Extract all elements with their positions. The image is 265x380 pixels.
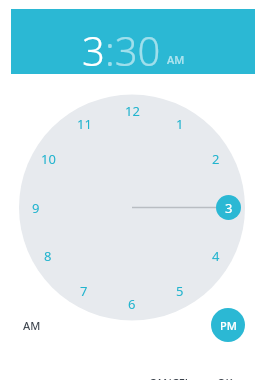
staticText: 1 bbox=[176, 115, 184, 133]
staticText: 7 bbox=[80, 282, 88, 300]
staticText: 3 bbox=[225, 199, 233, 217]
button[interactable]: 3 bbox=[11, 9, 255, 74]
button[interactable]: OK bbox=[211, 371, 239, 380]
staticText: AM bbox=[167, 52, 185, 67]
button[interactable]: :30 bbox=[105, 23, 161, 77]
staticText: 6 bbox=[128, 295, 136, 313]
button[interactable]: 11 bbox=[71, 113, 97, 135]
staticText: 10 bbox=[41, 150, 56, 168]
staticText: OK bbox=[217, 375, 233, 380]
staticText: 2 bbox=[212, 150, 220, 168]
button[interactable]: 8 bbox=[35, 245, 61, 267]
staticText: 11 bbox=[77, 115, 92, 133]
button[interactable]: AM bbox=[23, 313, 57, 337]
button[interactable]: 12 bbox=[119, 100, 145, 122]
button[interactable]: 3 bbox=[82, 23, 105, 77]
staticText: 4 bbox=[212, 247, 220, 265]
staticText: 5 bbox=[176, 282, 184, 300]
staticText: 12 bbox=[125, 102, 140, 120]
button[interactable]: CANCEL bbox=[142, 371, 198, 380]
staticText: 9 bbox=[32, 199, 40, 217]
button[interactable]: 2 bbox=[203, 148, 229, 170]
button[interactable]: 4 bbox=[203, 245, 229, 267]
button[interactable]: 5 bbox=[167, 280, 193, 302]
button[interactable]: 9 bbox=[23, 197, 49, 219]
button[interactable]: PM bbox=[211, 308, 245, 342]
staticText: 8 bbox=[44, 247, 52, 265]
staticText: PM bbox=[220, 318, 237, 333]
button[interactable]: AM bbox=[167, 52, 185, 67]
button[interactable]: 1 bbox=[167, 113, 193, 135]
button[interactable]: 3 bbox=[216, 197, 242, 219]
staticText: CANCEL bbox=[149, 375, 191, 380]
button[interactable]: 7 bbox=[71, 280, 97, 302]
button[interactable]: 6 bbox=[119, 293, 145, 315]
button[interactable]: 10 bbox=[35, 148, 61, 170]
staticText: AM bbox=[23, 318, 41, 333]
